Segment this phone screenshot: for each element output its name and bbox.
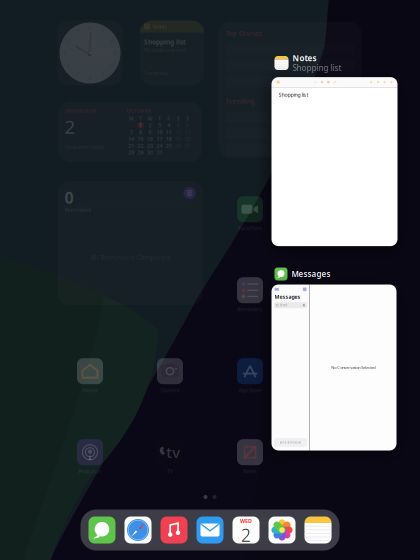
button[interactable]: Safari: [124, 516, 151, 543]
staticText: News: [243, 468, 257, 475]
staticText: 16: [147, 135, 153, 142]
button[interactable]: Notes: [304, 516, 331, 543]
staticText: FaceTime: [238, 225, 262, 232]
staticText: W: [147, 115, 152, 122]
button[interactable]: Music: [160, 516, 187, 543]
button[interactable]: tv: [147, 439, 193, 475]
staticText: Top Stories: [225, 29, 261, 38]
staticText: 28: [128, 149, 134, 156]
staticText: 3: [158, 122, 161, 129]
staticText: Messages: [291, 269, 330, 279]
staticText: App Store: [238, 387, 261, 394]
staticText: Shopping list: [292, 62, 341, 73]
staticText: No additional text: [144, 46, 186, 53]
staticText: Camera: [160, 387, 179, 394]
staticText: T: [139, 115, 142, 122]
staticText: Notes: [152, 23, 167, 30]
button[interactable]: Camera: [147, 358, 193, 394]
staticText: WED: [240, 517, 252, 524]
staticText: Shopping list: [278, 91, 308, 98]
staticText: 17: [156, 135, 162, 142]
staticText: Home: [82, 387, 97, 394]
staticText: 2: [241, 523, 251, 546]
staticText: 23: [147, 142, 153, 149]
staticText: No events today: [64, 143, 104, 150]
staticText: 31: [156, 149, 162, 156]
staticText: 18: [166, 135, 172, 142]
staticText: 9: [148, 128, 151, 136]
button[interactable]: Reminders: [227, 277, 273, 313]
staticText: No Conversation Selected: [331, 365, 375, 370]
button[interactable]: FaceTime: [227, 196, 273, 232]
staticText: OCTOBER: [126, 107, 150, 114]
staticText: M: [129, 115, 134, 122]
button[interactable]: Podcasts: [67, 439, 113, 475]
staticText: Podcasts: [78, 468, 101, 475]
staticText: 22: [138, 142, 144, 149]
staticText: 8: [139, 128, 142, 136]
staticText: 10: [156, 128, 162, 136]
staticText: Yesterday: [144, 69, 169, 76]
staticText: Send & Receive: [279, 441, 301, 444]
button[interactable]: Messages: [88, 516, 115, 543]
staticText: Messages: [274, 293, 300, 300]
button[interactable]: Messages: [271, 267, 396, 450]
button[interactable]: Home: [67, 358, 113, 394]
staticText: S: [186, 115, 189, 122]
button[interactable]: News: [227, 439, 273, 475]
button[interactable]: Photos: [268, 516, 295, 543]
staticText: 11: [166, 128, 172, 136]
button[interactable]: Mail: [196, 516, 223, 543]
staticText: WEDNESDAY: [64, 107, 96, 114]
staticText: Shopping list: [144, 37, 186, 46]
staticText: tv: [166, 442, 180, 462]
button[interactable]: Calendar: [232, 516, 259, 543]
staticText: Reminders: [64, 206, 91, 213]
staticText: Search: [280, 303, 288, 307]
staticText: 4: [167, 122, 170, 129]
staticText: 1: [139, 122, 142, 129]
staticText: 24: [156, 142, 162, 149]
staticText: S: [177, 115, 180, 122]
staticText: 14: [128, 135, 134, 142]
staticText: T: [158, 115, 161, 122]
staticText: 2: [148, 122, 151, 129]
button[interactable]: App Store: [227, 358, 273, 394]
staticText: F: [167, 115, 170, 122]
staticText: 30: [147, 149, 153, 156]
staticText: 15: [138, 135, 144, 142]
staticText: Notes: [292, 53, 316, 63]
staticText: TV: [167, 468, 173, 475]
staticText: 2: [64, 114, 75, 139]
staticText: Trending: [225, 97, 254, 106]
staticText: All Reminders Completed: [90, 253, 170, 262]
staticText: Reminders: [237, 306, 263, 313]
staticText: 25: [166, 142, 172, 149]
staticText: 21: [128, 142, 134, 149]
staticText: 29: [138, 149, 144, 156]
staticText: 0: [64, 187, 73, 208]
button[interactable]: Notes: [271, 53, 397, 246]
staticText: 7: [130, 128, 133, 136]
